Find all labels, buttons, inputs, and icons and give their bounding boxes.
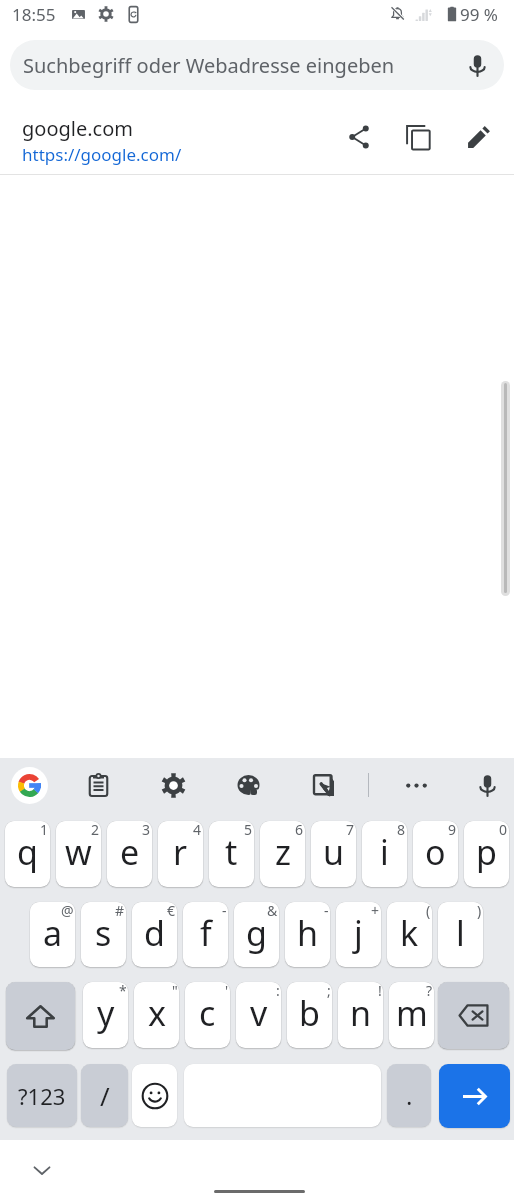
button[interactable]: 7 (311, 821, 356, 887)
staticText: 7 (346, 821, 355, 839)
button[interactable]: Voice input (465, 763, 509, 807)
staticText: 1 (40, 821, 49, 839)
staticText: s (95, 910, 112, 956)
button[interactable]: ? (389, 982, 434, 1048)
button[interactable]: 4 (158, 821, 203, 887)
button[interactable]: Google search (11, 767, 48, 804)
staticText: j (354, 910, 363, 956)
staticText: r (173, 829, 188, 875)
button[interactable]: / (81, 1064, 128, 1127)
button[interactable]: * (83, 982, 128, 1048)
button[interactable]: Suchbegriff oder Webadresse eingeben (10, 40, 504, 90)
staticText: - (222, 902, 227, 920)
button[interactable]: + (336, 902, 381, 967)
staticText: q (17, 829, 38, 875)
button[interactable]: Resize keyboard (302, 763, 346, 807)
button[interactable]: Clipboard (76, 763, 120, 807)
staticText: @ (61, 902, 74, 920)
staticText: ( (426, 902, 431, 920)
staticText: z (275, 829, 291, 875)
staticText: m (396, 990, 428, 1036)
staticText: ) (477, 902, 482, 920)
button[interactable]: ) (438, 902, 483, 967)
button[interactable]: @ (30, 902, 75, 967)
staticText: ! (378, 982, 382, 1000)
button[interactable]: - (285, 902, 330, 967)
button[interactable]: 8 (362, 821, 407, 887)
button[interactable]: " (134, 982, 179, 1048)
button[interactable]: : (236, 982, 281, 1048)
staticText: t (225, 829, 238, 875)
staticText: ? (426, 982, 433, 1000)
button[interactable]: 5 (209, 821, 254, 887)
staticText: x (148, 990, 166, 1036)
button[interactable]: € (132, 902, 177, 967)
staticText: - (324, 902, 329, 920)
button[interactable]: 6 (260, 821, 305, 887)
button[interactable]: 9 (413, 821, 458, 887)
staticText: h (297, 910, 319, 956)
staticText: b (299, 990, 320, 1036)
staticText: 8 (397, 821, 406, 839)
button[interactable]: ( (387, 902, 432, 967)
staticText: o (425, 829, 446, 875)
button[interactable]: 2 (56, 821, 101, 887)
button[interactable]: Shift (6, 982, 75, 1050)
staticText: 5 (244, 821, 253, 839)
staticText: ; (327, 982, 331, 1000)
staticText: 3 (142, 821, 151, 839)
button[interactable]: 0 (464, 821, 509, 887)
button[interactable]: Theme (226, 763, 270, 807)
button[interactable]: Settings (151, 763, 195, 807)
button[interactable]: Hide keyboard (26, 1154, 58, 1186)
staticText: . (406, 1079, 413, 1112)
staticText: u (323, 829, 345, 875)
staticText: y (97, 990, 115, 1036)
staticText: ' (225, 982, 229, 1000)
button[interactable]: Emoji (132, 1064, 177, 1127)
staticText: a (43, 910, 63, 956)
button[interactable]: - (183, 902, 228, 967)
staticText: 18:55 (12, 3, 56, 26)
button[interactable]: . (387, 1064, 431, 1127)
staticText: ?123 (18, 1081, 66, 1111)
staticText: 6 (295, 821, 304, 839)
button[interactable]: Copy (396, 115, 440, 159)
staticText: 0 (499, 821, 508, 839)
staticText: c (199, 990, 216, 1036)
staticText: 99 % (460, 3, 498, 26)
button[interactable]: ; (287, 982, 332, 1048)
staticText: & (267, 902, 278, 920)
staticText: + (371, 902, 380, 920)
staticText: f (200, 910, 212, 956)
staticText: : (276, 982, 280, 1000)
staticText: i (380, 829, 389, 875)
button[interactable]: 3 (107, 821, 152, 887)
staticText: d (144, 910, 165, 956)
button[interactable]: Enter (439, 1064, 510, 1128)
staticText: # (115, 902, 125, 920)
staticText: * (119, 982, 127, 1000)
button[interactable]: google.com (0, 98, 514, 173)
staticText: w (65, 829, 92, 875)
staticText: n (350, 990, 372, 1036)
button[interactable]: & (234, 902, 279, 967)
button[interactable]: More options (394, 763, 438, 807)
staticText: e (120, 829, 140, 875)
button[interactable]: Edit (457, 115, 501, 159)
staticText: / (100, 1078, 110, 1113)
staticText: 2 (91, 821, 100, 839)
button[interactable]: ! (338, 982, 383, 1048)
button[interactable]: ?123 (7, 1064, 77, 1127)
button[interactable]: ' (185, 982, 230, 1048)
staticText: 4 (193, 821, 202, 839)
staticText: https://google.com/ (22, 143, 182, 166)
button[interactable]: Share (337, 115, 381, 159)
staticText: l (456, 910, 465, 956)
button[interactable]: 1 (5, 821, 50, 887)
staticText: v (250, 990, 268, 1036)
staticText: € (167, 902, 176, 920)
button[interactable]: # (81, 902, 126, 967)
button[interactable]: Backspace (438, 982, 509, 1049)
